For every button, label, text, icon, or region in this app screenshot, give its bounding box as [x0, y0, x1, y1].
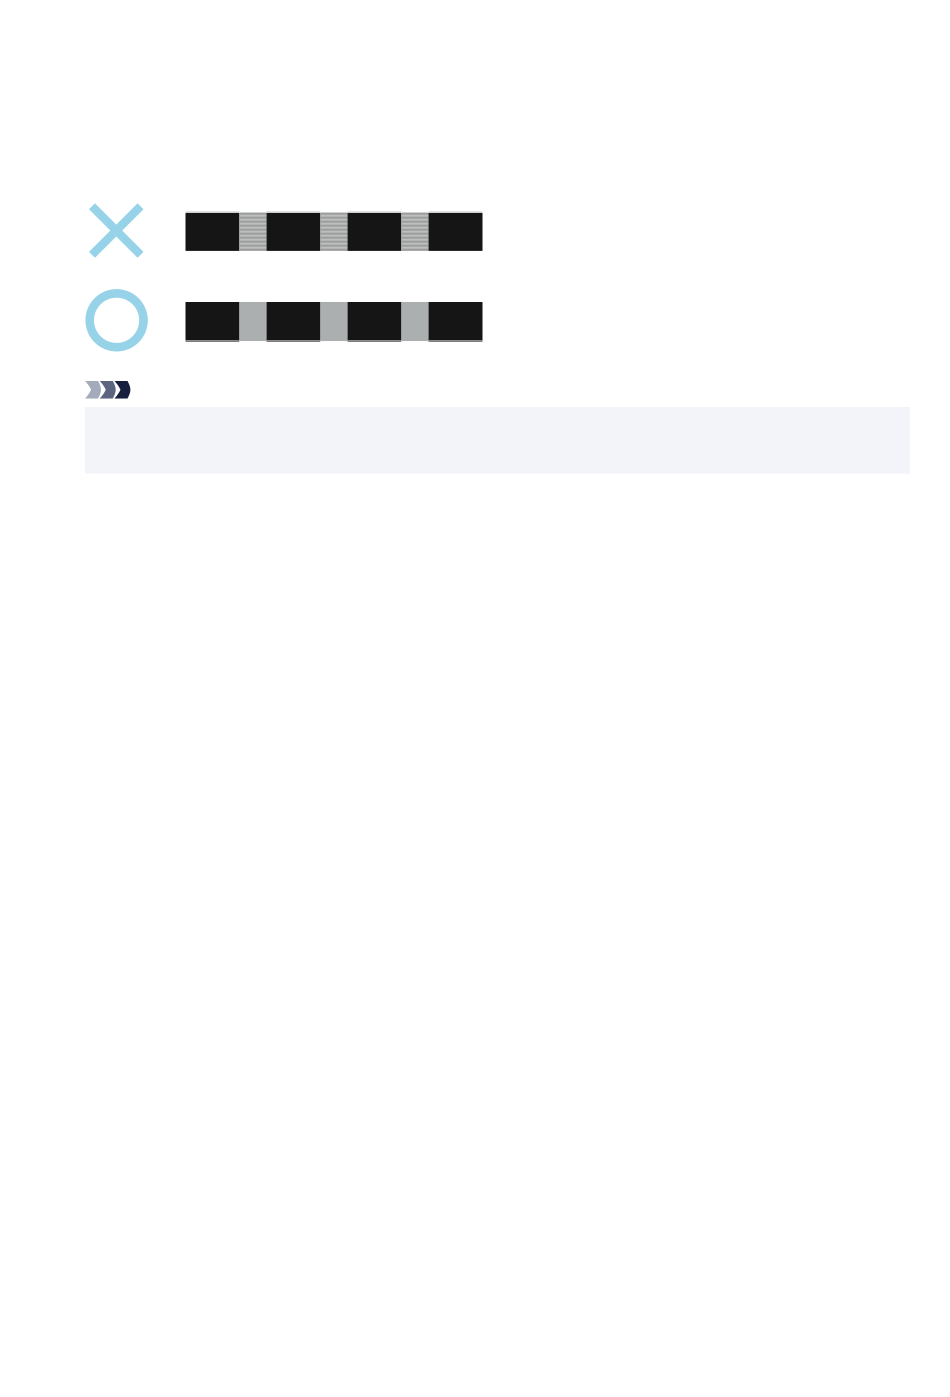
button[interactable]: Incorrect example — [85, 203, 482, 259]
button[interactable]: Skip forward — [85, 381, 130, 398]
button[interactable]: Correct example — [85, 289, 482, 352]
